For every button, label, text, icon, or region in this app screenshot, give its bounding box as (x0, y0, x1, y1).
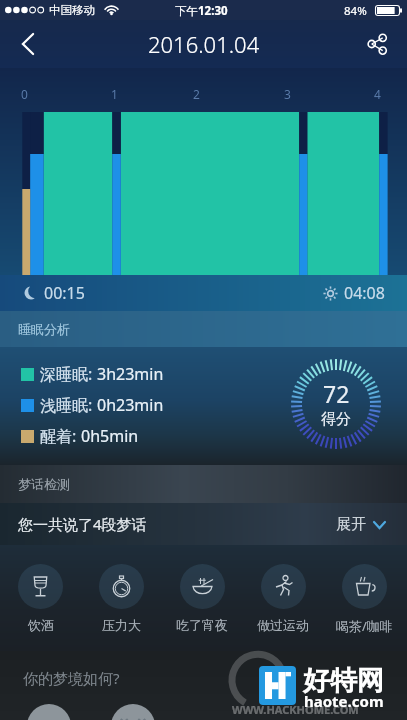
staticText: 睡眠分析 (18, 321, 70, 337)
staticText: 0 (21, 86, 28, 102)
button[interactable]: Back (10, 26, 46, 62)
staticText: 0h23min (97, 394, 164, 416)
staticText: 04:08 (344, 282, 385, 304)
staticText: 好特网 (303, 664, 384, 698)
staticText: 深睡眠: (40, 363, 97, 385)
staticText: 3 (284, 86, 291, 102)
staticText: 1 (111, 86, 118, 102)
staticText: 中国移动 (49, 3, 95, 17)
staticText: WWW.HACKHOME.COM (232, 702, 359, 717)
staticText: 72 (323, 378, 350, 409)
staticText: 下午 (175, 4, 198, 18)
staticText: 醒着: (40, 425, 81, 447)
staticText: 得分 (321, 410, 351, 429)
staticText: 喝茶/咖啡 (336, 617, 393, 635)
button[interactable]: Share (359, 26, 395, 62)
staticText: 吃了宵夜 (176, 617, 228, 633)
staticText: 展开 (336, 515, 366, 534)
staticText: 压力大 (102, 617, 141, 633)
staticText: 梦话检测 (18, 476, 70, 492)
staticText: haote.com (304, 691, 384, 711)
button[interactable]: Good dream (27, 704, 71, 720)
staticText: 2 (193, 86, 200, 102)
staticText: 3h23min (97, 363, 164, 385)
staticText: 你的梦境如何? (23, 668, 120, 688)
staticText: 2016.01.04 (148, 29, 260, 59)
button[interactable]: 吃了宵夜 (164, 564, 240, 638)
staticText: 84% (344, 3, 367, 19)
button[interactable]: 饮酒 (2, 564, 78, 638)
button[interactable]: 压力大 (83, 564, 159, 638)
staticText: 12:30 (198, 3, 228, 19)
staticText: 您一共说了4段梦话 (18, 514, 147, 534)
staticText: 4 (374, 86, 381, 102)
button[interactable]: Bad dream (111, 704, 155, 720)
button[interactable]: 您一共说了4段梦话 (0, 503, 407, 545)
staticText: 0h5min (81, 425, 139, 447)
staticText: 做过运动 (257, 617, 309, 633)
button[interactable]: 做过运动 (245, 564, 321, 638)
button[interactable]: 喝茶/咖啡 (326, 564, 402, 638)
staticText: 饮酒 (28, 617, 54, 633)
staticText: 00:15 (44, 282, 85, 304)
staticText: 浅睡眠: (40, 394, 97, 416)
